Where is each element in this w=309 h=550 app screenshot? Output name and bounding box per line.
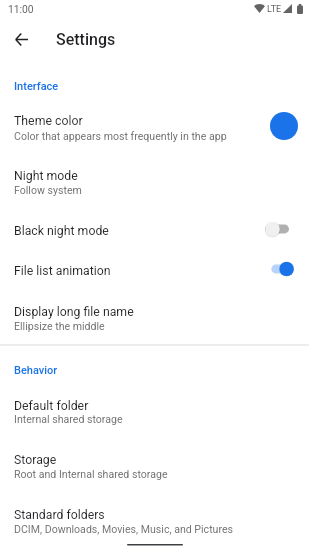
staticText: Behavior — [14, 364, 58, 377]
staticText: Default folder — [14, 399, 89, 413]
button[interactable] — [0, 102, 309, 147]
staticText: Storage — [14, 453, 57, 467]
button[interactable]: Back — [4, 22, 38, 56]
staticText: Theme color — [14, 114, 83, 128]
staticText: 11:00 — [8, 3, 34, 15]
button[interactable] — [0, 387, 309, 432]
staticText: Display long file name — [14, 305, 134, 319]
staticText: Black night mode — [14, 224, 109, 238]
staticText: Ellipsize the middle — [14, 320, 105, 332]
button[interactable] — [0, 442, 309, 487]
staticText: Follow system — [14, 184, 82, 196]
staticText: Color that appears most frequently in th… — [14, 130, 227, 142]
staticText: Night mode — [14, 169, 78, 183]
staticText: DCIM, Downloads, Movies, Music, and Pict… — [14, 523, 234, 535]
staticText: Standard folders — [14, 508, 105, 522]
staticText: Root and Internal shared storage — [14, 468, 168, 480]
staticText: File list animation — [14, 264, 111, 278]
button[interactable]: Switch on — [270, 259, 296, 279]
button[interactable]: Switch off — [264, 219, 290, 239]
button[interactable] — [0, 252, 309, 292]
staticText: LTE — [267, 4, 282, 15]
button[interactable]: Theme color — [270, 112, 298, 140]
button[interactable] — [0, 212, 309, 252]
button[interactable] — [0, 292, 309, 337]
staticText: Interface — [14, 80, 59, 93]
button[interactable] — [0, 157, 309, 202]
staticText: Internal shared storage — [14, 413, 123, 425]
button[interactable] — [0, 497, 309, 542]
staticText: Settings — [56, 30, 116, 49]
